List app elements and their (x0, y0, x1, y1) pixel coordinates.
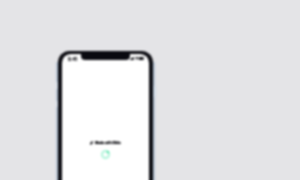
button[interactable]: Made with Glide (89, 141, 122, 145)
button[interactable]: Volume up (56, 82, 58, 89)
staticText: Made with Glide (95, 141, 121, 145)
staticText: Made with Glide (95, 141, 121, 145)
button[interactable]: Volume down (56, 101, 58, 107)
staticText: Made with Glide (95, 141, 121, 145)
staticText: 9:41 (68, 57, 78, 62)
other: Loading (101, 150, 110, 159)
staticText: 9:41 (68, 57, 78, 62)
button[interactable]: Side button (154, 86, 156, 97)
other: Signal, Wi-Fi and battery status (130, 57, 144, 60)
